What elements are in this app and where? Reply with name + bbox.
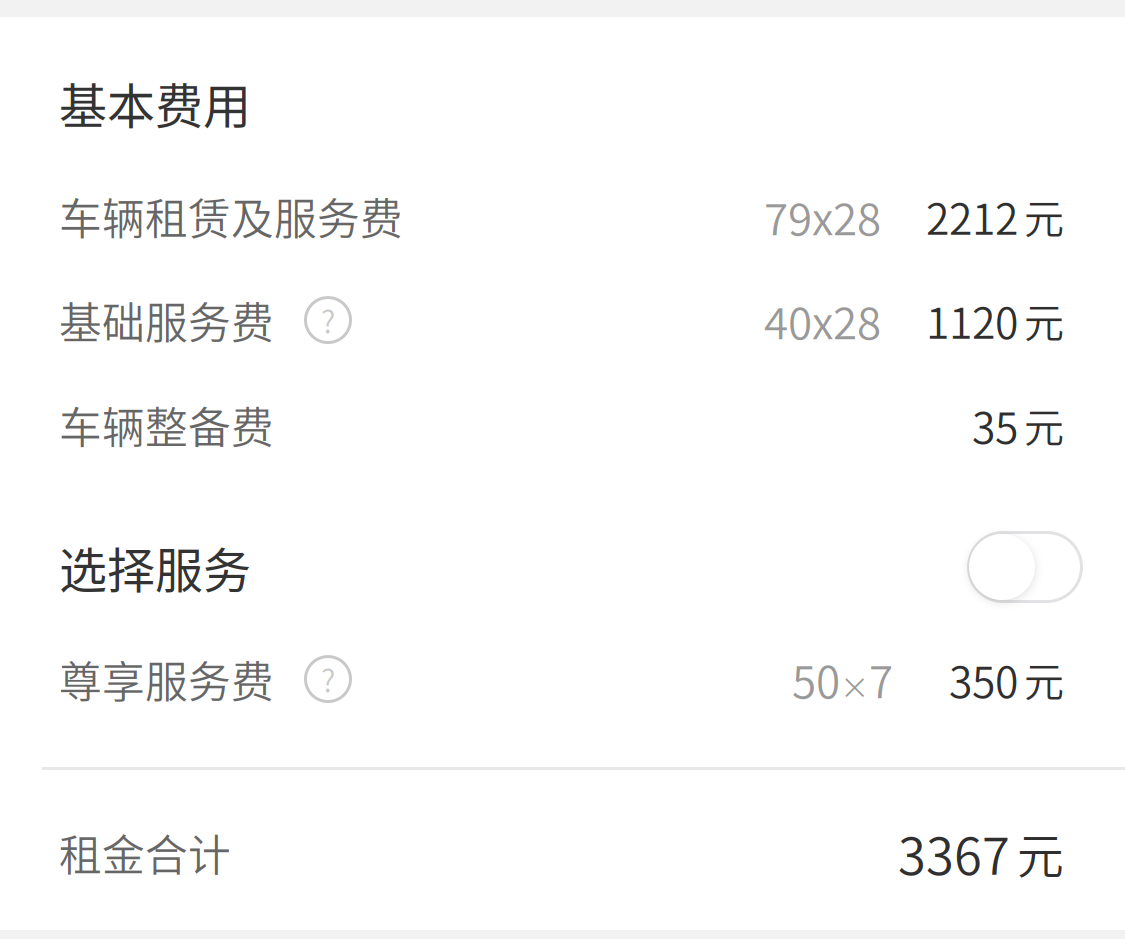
staticText: 车辆租赁及服务费 — [59, 185, 403, 247]
staticText: 尊享服务费 — [59, 648, 274, 710]
staticText: 车辆整备费 — [59, 394, 274, 456]
staticText: 35 — [972, 394, 1018, 456]
staticText: 基本费用 — [59, 68, 251, 137]
staticText: ? — [321, 298, 335, 342]
staticText: 元 — [1024, 187, 1064, 245]
button[interactable]: Optional services — [967, 531, 1083, 603]
staticText: 2212 — [926, 185, 1018, 247]
staticText: 350 — [949, 648, 1018, 710]
staticText: 选择服务 — [59, 532, 251, 602]
staticText: 40x28 — [764, 289, 881, 351]
staticText: 3367 — [898, 816, 1010, 889]
button[interactable]: Fee explanation — [300, 651, 356, 707]
staticText: 1120 — [926, 289, 1018, 351]
staticText: 租金合计 — [59, 822, 231, 884]
staticText: 基础服务费 — [59, 289, 274, 351]
staticText: 50×7 — [792, 648, 893, 710]
staticText: ? — [321, 657, 335, 701]
staticText: 元 — [1017, 819, 1064, 886]
staticText: 元 — [1024, 291, 1064, 349]
button[interactable]: Fee explanation — [300, 292, 356, 348]
staticText: 元 — [1024, 396, 1064, 454]
staticText: 79x28 — [764, 185, 881, 247]
staticText: 元 — [1024, 650, 1064, 708]
